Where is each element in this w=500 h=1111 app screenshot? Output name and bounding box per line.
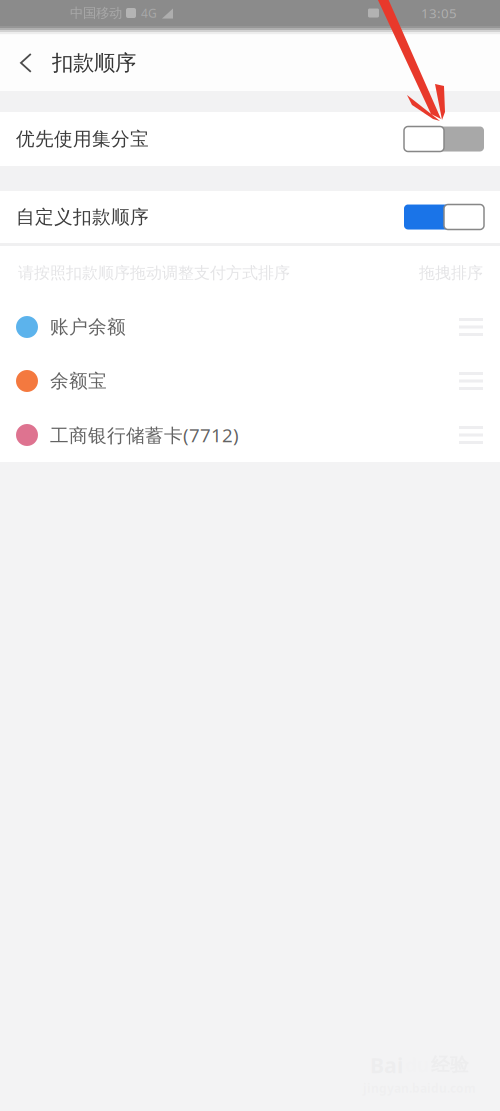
- staticText: 请按照扣款顺序拖动调整支付方式排序: [18, 263, 290, 283]
- button[interactable]: Toggle, on: [404, 204, 484, 229]
- staticText: 13:05: [421, 4, 457, 22]
- staticText: 拖拽排序: [419, 263, 483, 283]
- staticText: 账户余额: [50, 315, 126, 338]
- button[interactable]: Toggle, off: [404, 126, 484, 151]
- staticText: 优先使用集分宝: [16, 127, 149, 150]
- button[interactable]: 自定义扣款顺序: [0, 191, 500, 243]
- staticText: 中国移动: [70, 5, 122, 21]
- button[interactable]: 余额宝: [0, 354, 500, 408]
- button[interactable]: 账户余额: [0, 300, 500, 354]
- staticText: 扣款顺序: [52, 50, 136, 76]
- button[interactable]: Back: [0, 36, 52, 90]
- staticText: 余额宝: [50, 369, 107, 392]
- staticText: 工商银行储蓄卡(7712): [50, 423, 239, 447]
- button[interactable]: 优先使用集分宝: [0, 112, 500, 166]
- button[interactable]: 工商银行储蓄卡(7712): [0, 408, 500, 462]
- staticText: 4G: [141, 5, 157, 21]
- staticText: 自定义扣款顺序: [16, 205, 149, 228]
